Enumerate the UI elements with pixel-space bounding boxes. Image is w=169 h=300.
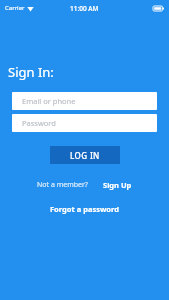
button[interactable]: Not a member?	[35, 178, 90, 192]
staticText: Sign In:	[8, 63, 54, 81]
staticText: LOG IN	[70, 150, 100, 161]
staticText: Sign Up	[103, 180, 132, 190]
button[interactable]: Password	[12, 114, 157, 132]
staticText: Not a member?	[37, 180, 88, 190]
button[interactable]: Forgot a password	[46, 202, 123, 216]
staticText: Email or phone	[22, 96, 76, 106]
button[interactable]: Sign Up	[101, 178, 134, 192]
button[interactable]: Email or phone	[12, 92, 157, 110]
staticText: 11:00 AM	[70, 4, 99, 13]
staticText: Forgot a password	[50, 204, 119, 214]
button[interactable]: LOG IN	[50, 146, 120, 164]
staticText: Password	[22, 118, 56, 128]
staticText: Carrier	[5, 4, 25, 12]
